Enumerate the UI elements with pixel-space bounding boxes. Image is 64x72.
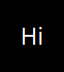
- staticText: Hi: [20, 21, 43, 51]
